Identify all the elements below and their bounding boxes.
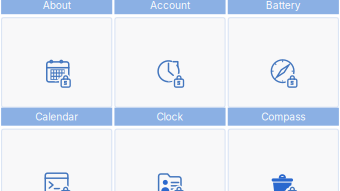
button[interactable]: Compass [228, 17, 339, 126]
staticText: About [43, 0, 71, 11]
button[interactable]: Calendar [1, 17, 112, 126]
button[interactable]: Battery [228, 0, 339, 14]
button[interactable]: Account [114, 0, 225, 14]
button[interactable]: Clock [114, 17, 225, 126]
button[interactable] [1, 129, 112, 191]
staticText: Clock [156, 111, 183, 123]
button[interactable] [114, 129, 225, 191]
staticText: Compass [261, 111, 305, 123]
staticText: Battery [266, 0, 301, 11]
staticText: Account [150, 0, 190, 11]
button[interactable] [228, 129, 339, 191]
button[interactable]: About [1, 0, 112, 14]
staticText: Calendar [35, 111, 78, 123]
